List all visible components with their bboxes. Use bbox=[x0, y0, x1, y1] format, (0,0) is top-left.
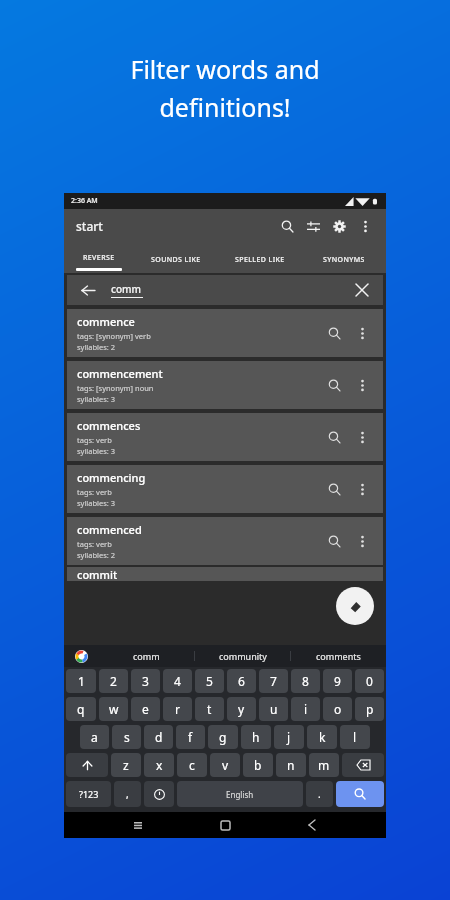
button[interactable]: d bbox=[144, 725, 173, 749]
button[interactable]: b bbox=[243, 753, 273, 777]
button[interactable]: 7 bbox=[259, 669, 288, 693]
button[interactable]: , bbox=[114, 781, 141, 807]
button[interactable]: Back bbox=[77, 279, 99, 301]
button[interactable]: Back bbox=[299, 812, 325, 838]
button[interactable]: commencing bbox=[67, 465, 383, 513]
button[interactable]: f bbox=[176, 725, 205, 749]
button[interactable]: REVERSE bbox=[64, 243, 134, 273]
button[interactable]: Add bbox=[336, 587, 374, 625]
button[interactable]: Search bbox=[274, 213, 300, 239]
button[interactable]: Search word bbox=[321, 320, 347, 346]
button[interactable]: 5 bbox=[195, 669, 224, 693]
button[interactable]: More bbox=[349, 424, 375, 450]
button[interactable]: o bbox=[323, 697, 352, 721]
button[interactable]: Clear bbox=[351, 279, 373, 301]
button[interactable]: 3 bbox=[131, 669, 160, 693]
button[interactable]: m bbox=[309, 753, 339, 777]
button[interactable]: comm bbox=[98, 645, 194, 667]
button[interactable]: More options bbox=[352, 213, 378, 239]
button[interactable]: Search word bbox=[321, 372, 347, 398]
staticText: d bbox=[155, 729, 163, 745]
button[interactable]: English bbox=[177, 781, 303, 807]
button[interactable]: g bbox=[208, 725, 238, 749]
button[interactable]: y bbox=[227, 697, 256, 721]
button[interactable]: j bbox=[274, 725, 304, 749]
button[interactable]: commencement bbox=[67, 361, 383, 409]
button[interactable]: More bbox=[349, 372, 375, 398]
button[interactable]: Backspace bbox=[342, 753, 384, 777]
staticText: x bbox=[156, 757, 163, 773]
button[interactable]: community bbox=[195, 645, 290, 667]
staticText: 0 bbox=[366, 673, 373, 689]
button[interactable]: . bbox=[306, 781, 333, 807]
button[interactable]: 6 bbox=[227, 669, 256, 693]
staticText: syllables: 3 bbox=[77, 446, 116, 456]
button[interactable]: 9 bbox=[323, 669, 352, 693]
button[interactable]: z bbox=[111, 753, 141, 777]
staticText: h bbox=[252, 729, 260, 745]
button[interactable]: l bbox=[340, 725, 370, 749]
button[interactable]: r bbox=[163, 697, 192, 721]
button[interactable]: More bbox=[349, 476, 375, 502]
button[interactable]: i bbox=[291, 697, 320, 721]
button[interactable]: Search word bbox=[321, 528, 347, 554]
staticText: SPELLED LIKE bbox=[235, 255, 285, 265]
staticText: 8 bbox=[302, 673, 309, 689]
button[interactable]: commit bbox=[67, 567, 383, 581]
button[interactable]: commenced bbox=[67, 517, 383, 565]
button[interactable]: 4 bbox=[163, 669, 192, 693]
button[interactable]: SPELLED LIKE bbox=[218, 243, 302, 273]
button[interactable]: SOUNDS LIKE bbox=[134, 243, 218, 273]
button[interactable]: Settings bbox=[326, 213, 352, 239]
button[interactable]: Emoji bbox=[144, 781, 174, 807]
button[interactable]: 2 bbox=[99, 669, 128, 693]
button[interactable]: Search word bbox=[321, 424, 347, 450]
staticText: z bbox=[123, 757, 129, 773]
button[interactable]: Shift bbox=[66, 753, 108, 777]
button[interactable]: 8 bbox=[291, 669, 320, 693]
button[interactable]: p bbox=[355, 697, 384, 721]
button[interactable]: c bbox=[177, 753, 207, 777]
button[interactable]: Home bbox=[212, 812, 238, 838]
button[interactable]: v bbox=[210, 753, 240, 777]
button[interactable]: u bbox=[259, 697, 288, 721]
staticText: f bbox=[188, 729, 193, 745]
button[interactable]: 0 bbox=[355, 669, 384, 693]
button[interactable]: a bbox=[80, 725, 109, 749]
button[interactable]: ?123 bbox=[66, 781, 111, 807]
button[interactable]: More bbox=[349, 320, 375, 346]
staticText: tags: verb bbox=[77, 487, 112, 497]
staticText: tags: verb bbox=[77, 539, 112, 549]
staticText: tags: [synonym] noun bbox=[77, 383, 154, 393]
button[interactable]: commence bbox=[67, 309, 383, 357]
button[interactable]: Search word bbox=[321, 476, 347, 502]
staticText: k bbox=[319, 729, 326, 745]
button[interactable]: x bbox=[144, 753, 174, 777]
button[interactable]: SYNONYMS bbox=[302, 243, 386, 273]
button[interactable]: Recents bbox=[125, 812, 151, 838]
button[interactable]: s bbox=[112, 725, 141, 749]
button[interactable]: w bbox=[99, 697, 128, 721]
button[interactable]: t bbox=[195, 697, 224, 721]
staticText: SOUNDS LIKE bbox=[151, 255, 201, 265]
button[interactable]: More bbox=[349, 528, 375, 554]
button[interactable]: h bbox=[241, 725, 271, 749]
button[interactable]: q bbox=[66, 697, 96, 721]
button[interactable]: comments bbox=[291, 645, 386, 667]
button[interactable]: e bbox=[131, 697, 160, 721]
staticText: commence bbox=[77, 314, 135, 329]
staticText: c bbox=[189, 757, 195, 773]
staticText: y bbox=[238, 701, 245, 717]
staticText: 3 bbox=[142, 673, 149, 689]
button[interactable]: k bbox=[307, 725, 337, 749]
button[interactable]: n bbox=[276, 753, 306, 777]
staticText: s bbox=[124, 729, 130, 745]
staticText: e bbox=[142, 701, 149, 717]
button[interactable]: commences bbox=[67, 413, 383, 461]
button[interactable]: Google bbox=[64, 645, 98, 667]
staticText: ?123 bbox=[79, 788, 99, 800]
button[interactable]: Filter bbox=[300, 213, 326, 239]
button[interactable]: 1 bbox=[66, 669, 96, 693]
button[interactable]: Search bbox=[336, 781, 384, 807]
staticText: commenced bbox=[77, 522, 142, 537]
